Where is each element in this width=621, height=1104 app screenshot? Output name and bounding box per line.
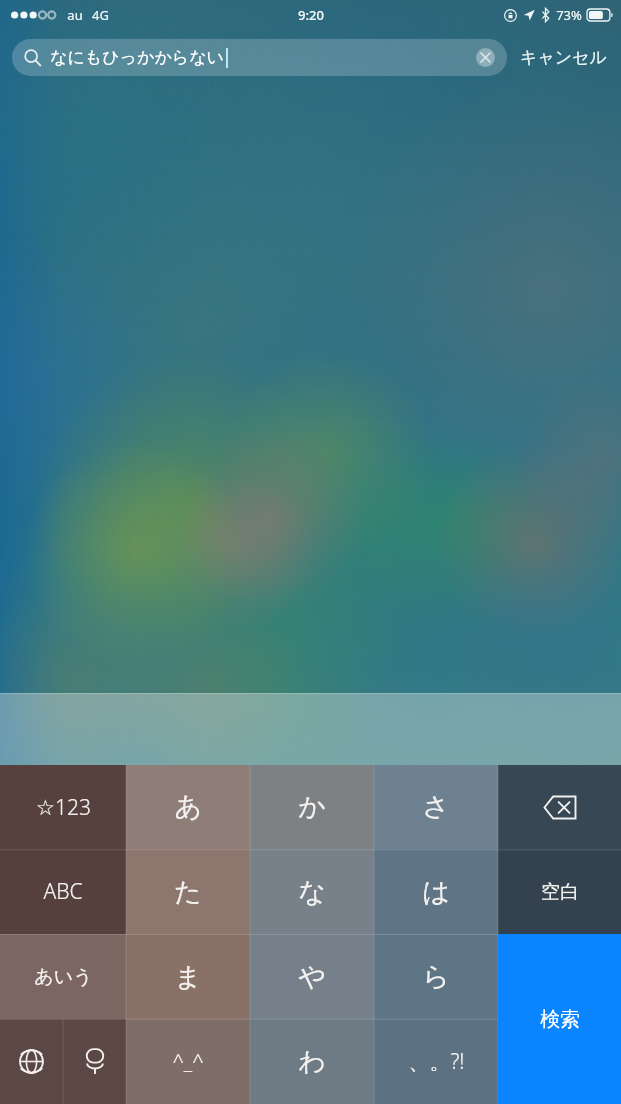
staticText: ABC — [43, 877, 83, 906]
staticText: 、。?! — [408, 1047, 465, 1076]
button[interactable]: な — [250, 849, 374, 934]
button[interactable]: わ — [250, 1019, 374, 1104]
button[interactable]: ま — [126, 934, 250, 1019]
staticText: ☆123 — [36, 793, 91, 822]
button[interactable]: キャンセル — [507, 47, 609, 68]
button[interactable]: ら — [374, 934, 498, 1019]
button[interactable]: あいう — [0, 934, 126, 1019]
staticText: キャンセル — [520, 47, 607, 68]
staticText: au — [67, 6, 83, 24]
staticText: な — [298, 875, 326, 909]
button[interactable]: ^_^ — [126, 1019, 250, 1104]
button[interactable] — [498, 1019, 621, 1104]
button[interactable] — [498, 934, 621, 1019]
button[interactable]: さ — [374, 765, 498, 849]
button[interactable]: Voice input — [63, 1019, 126, 1104]
staticText: ら — [422, 960, 450, 994]
staticText: 4G — [92, 6, 109, 24]
staticText: 空白 — [541, 880, 579, 904]
button[interactable]: ☆123 — [0, 765, 126, 849]
staticText: わ — [298, 1045, 326, 1079]
button[interactable]: は — [374, 849, 498, 934]
button[interactable]: か — [250, 765, 374, 849]
staticText: 73% — [556, 6, 582, 24]
staticText: 9:20 — [298, 6, 324, 24]
staticText: 検索 — [540, 1007, 580, 1032]
staticText: なにもひっかからない — [50, 47, 224, 68]
staticText: は — [422, 875, 450, 909]
button[interactable]: 、。?! — [374, 1019, 498, 1104]
staticText: か — [298, 790, 326, 824]
staticText: さ — [422, 790, 450, 824]
button[interactable]: あ — [126, 765, 250, 849]
staticText: ^_^ — [172, 1048, 204, 1075]
button[interactable]: なにもひっかからない — [12, 39, 507, 76]
button[interactable]: Switch keyboard — [0, 1019, 63, 1104]
button[interactable]: 空白 — [498, 849, 621, 934]
staticText: あいう — [34, 965, 93, 989]
button[interactable]: Delete — [498, 765, 621, 849]
button[interactable]: や — [250, 934, 374, 1019]
staticText: ま — [174, 960, 202, 994]
staticText: や — [298, 960, 326, 994]
staticText: あ — [174, 790, 202, 824]
button[interactable]: た — [126, 849, 250, 934]
button[interactable]: 検索 — [498, 934, 621, 1104]
button[interactable]: ABC — [0, 849, 126, 934]
staticText: た — [174, 875, 202, 909]
button[interactable]: Clear text — [476, 48, 495, 67]
